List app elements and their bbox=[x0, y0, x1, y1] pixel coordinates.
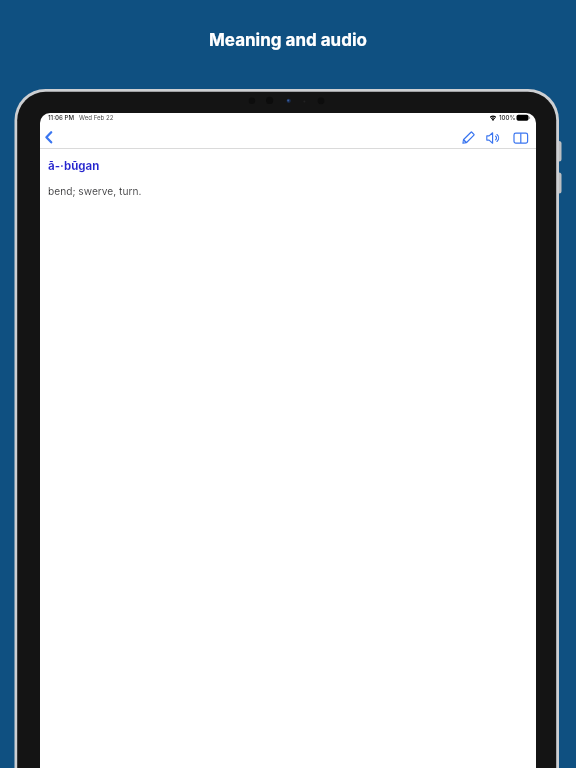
button[interactable] bbox=[458, 128, 478, 148]
staticText: 11:06 PM bbox=[48, 114, 75, 121]
staticText: Wed Feb 22 bbox=[79, 114, 114, 121]
staticText: 100% bbox=[499, 114, 516, 121]
button[interactable] bbox=[511, 128, 531, 148]
button[interactable] bbox=[484, 128, 504, 148]
button[interactable] bbox=[42, 129, 60, 147]
staticText: Meaning and audio bbox=[209, 30, 367, 51]
staticText: bend; swerve, turn. bbox=[48, 185, 142, 197]
staticText: ā-·būgan bbox=[48, 159, 100, 173]
